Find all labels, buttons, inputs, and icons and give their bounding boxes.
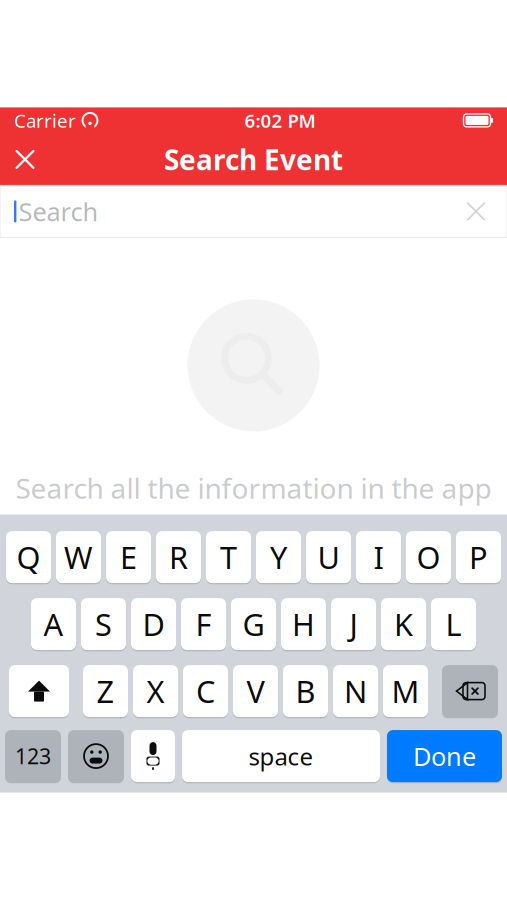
button[interactable]: Q xyxy=(6,531,51,583)
button[interactable]: D xyxy=(131,598,176,650)
staticText: Carrier xyxy=(14,108,76,133)
staticText: Z xyxy=(96,671,114,711)
button[interactable]: L xyxy=(431,598,476,650)
button[interactable]: P xyxy=(456,531,501,583)
staticText: E xyxy=(120,537,137,577)
button[interactable]: S xyxy=(81,598,126,650)
button[interactable]: I xyxy=(356,531,401,583)
staticText: T xyxy=(220,537,237,577)
staticText: B xyxy=(295,671,315,711)
staticText: W xyxy=(64,537,93,577)
button[interactable]: Done xyxy=(387,730,502,782)
staticText: O xyxy=(416,537,440,577)
button[interactable]: Search field xyxy=(0,185,507,237)
staticText: Q xyxy=(16,537,40,577)
staticText: Search xyxy=(18,195,98,228)
button[interactable]: W xyxy=(56,531,101,583)
staticText: A xyxy=(43,604,63,644)
staticText: N xyxy=(344,671,367,711)
staticText: Search all the information in the app xyxy=(15,469,491,507)
staticText: H xyxy=(292,604,315,644)
staticText: I xyxy=(373,537,383,577)
button[interactable]: C xyxy=(183,665,228,717)
button[interactable]: A xyxy=(31,598,76,650)
staticText: Search Event xyxy=(164,141,343,178)
staticText: M xyxy=(391,671,419,711)
staticText: G xyxy=(242,604,264,644)
staticText: Y xyxy=(270,537,287,577)
button[interactable]: Close xyxy=(0,135,50,183)
button[interactable]: Shift xyxy=(9,665,69,717)
button[interactable]: R xyxy=(156,531,201,583)
button[interactable]: B xyxy=(283,665,328,717)
staticText: K xyxy=(394,604,413,644)
staticText: J xyxy=(349,604,357,644)
staticText: L xyxy=(445,604,461,644)
staticText: F xyxy=(195,604,211,644)
button[interactable]: U xyxy=(306,531,351,583)
button[interactable]: X xyxy=(133,665,178,717)
button[interactable]: G xyxy=(231,598,276,650)
button[interactable]: T xyxy=(206,531,251,583)
button[interactable]: N xyxy=(333,665,378,717)
staticText: D xyxy=(142,604,164,644)
button[interactable]: Emoji xyxy=(68,730,124,782)
button[interactable]: K xyxy=(381,598,426,650)
staticText: P xyxy=(469,537,488,577)
button[interactable]: Y xyxy=(256,531,301,583)
button[interactable]: E xyxy=(106,531,151,583)
button[interactable]: F xyxy=(181,598,226,650)
button[interactable]: Delete xyxy=(442,665,498,717)
button[interactable]: H xyxy=(281,598,326,650)
button[interactable]: Dictate xyxy=(131,730,175,782)
staticText: 6:02 PM xyxy=(244,108,315,133)
button[interactable]: O xyxy=(406,531,451,583)
staticText: Done xyxy=(413,739,476,773)
button[interactable]: Numbers xyxy=(5,730,61,782)
staticText: S xyxy=(95,604,112,644)
button[interactable]: V xyxy=(233,665,278,717)
staticText: U xyxy=(317,537,339,577)
button[interactable]: Z xyxy=(83,665,128,717)
staticText: V xyxy=(246,671,264,711)
staticText: X xyxy=(146,671,164,711)
staticText: space xyxy=(248,740,313,772)
button[interactable]: space xyxy=(182,730,380,782)
staticText: C xyxy=(196,671,215,711)
staticText: R xyxy=(169,537,188,577)
button[interactable]: J xyxy=(331,598,376,650)
staticText: 123 xyxy=(15,742,51,770)
button[interactable]: M xyxy=(383,665,428,717)
